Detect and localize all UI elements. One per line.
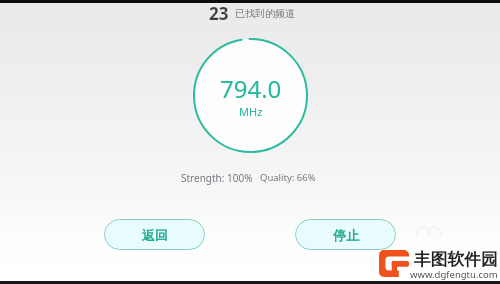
staticText: 返回 xyxy=(142,227,168,243)
button[interactable]: 返回 xyxy=(104,219,205,250)
staticText: Quality: 66% xyxy=(260,171,316,184)
staticText: 丰图软件园 xyxy=(414,249,498,270)
staticText: MHz xyxy=(239,104,263,119)
staticText: 已找到的频道 xyxy=(235,7,295,20)
staticText: 23 xyxy=(209,2,229,25)
staticText: www.dgfengtu.com xyxy=(410,268,498,281)
button[interactable]: 停止 xyxy=(295,219,396,250)
staticText: 794.0 xyxy=(220,72,282,105)
staticText: Strength: 100% xyxy=(181,171,253,185)
staticText: 停止 xyxy=(333,227,359,243)
